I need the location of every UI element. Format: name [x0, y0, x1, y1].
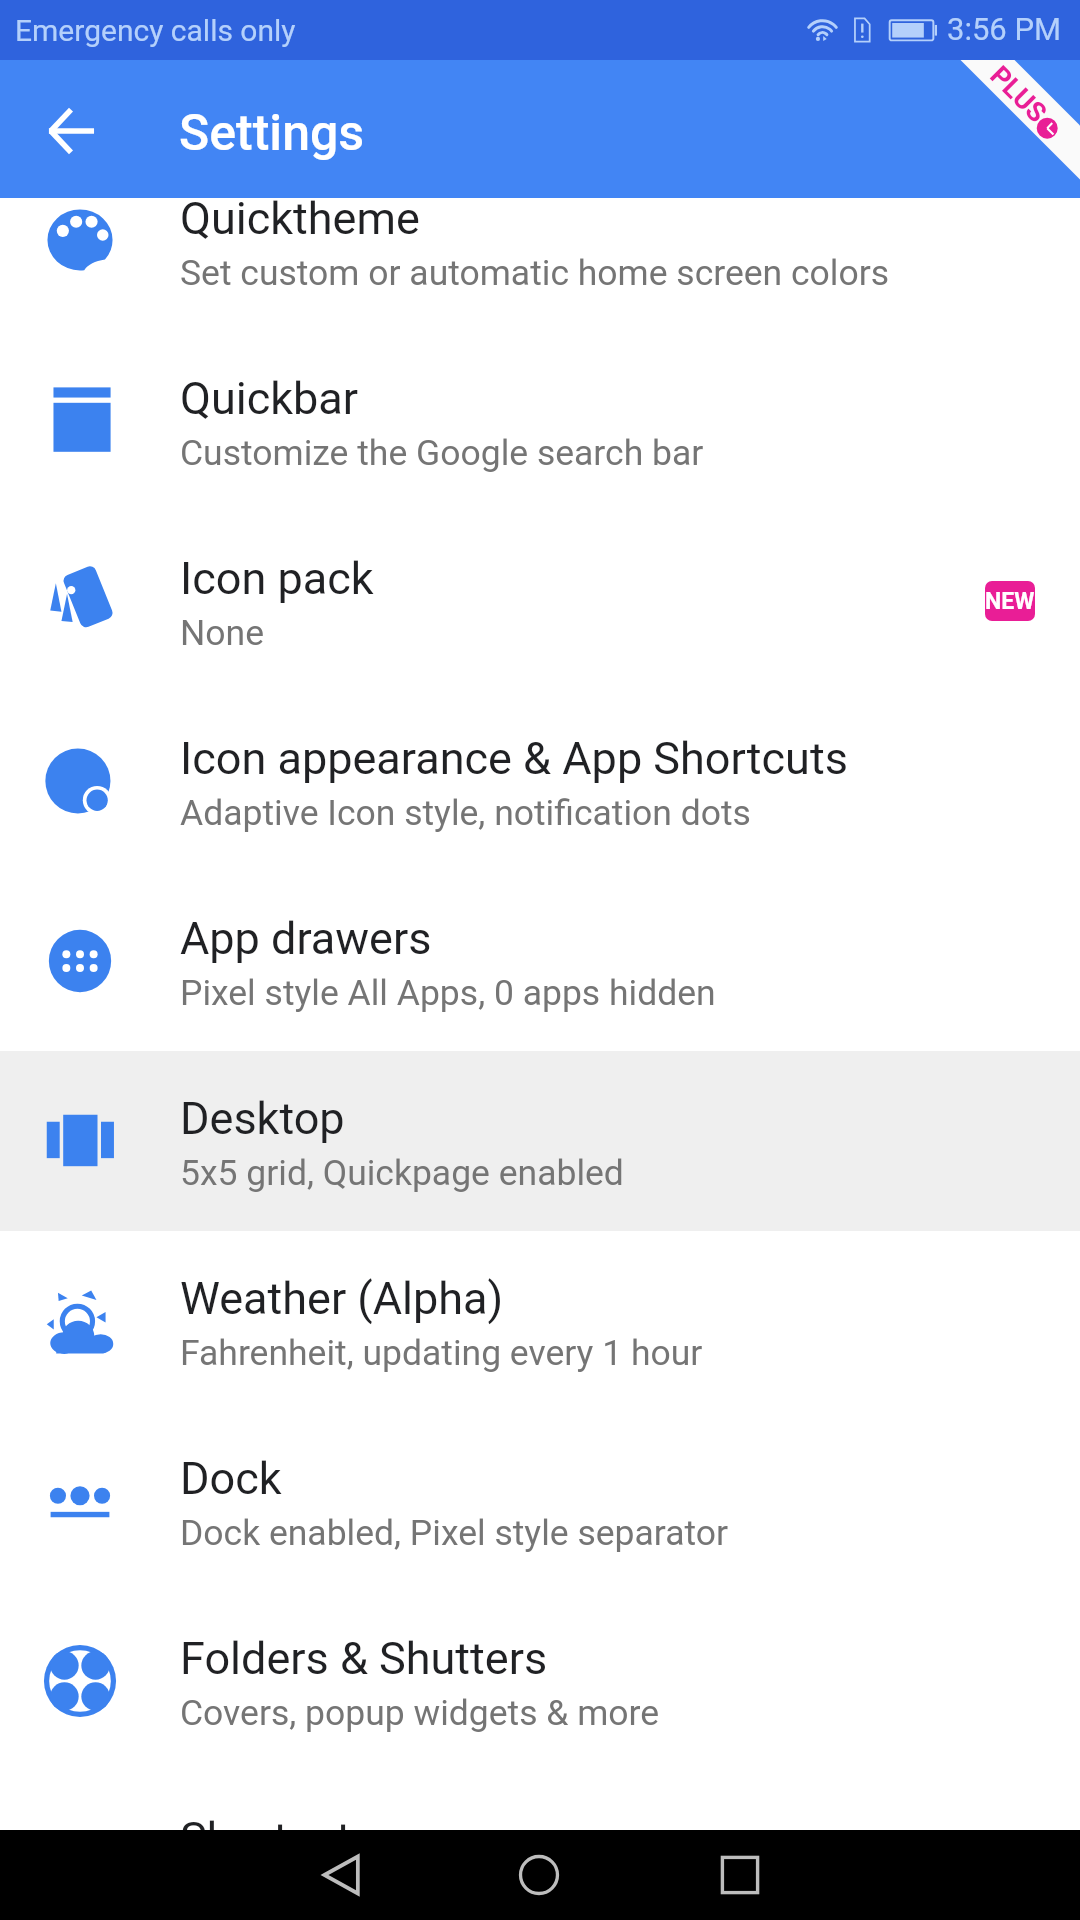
staticText: 3:56 PM: [947, 11, 1062, 47]
staticText: Icon appearance & App Shortcuts: [180, 732, 848, 785]
staticText: Folders & Shutters: [180, 1632, 548, 1685]
staticText: Dock enabled, Pixel style separator: [180, 1512, 728, 1554]
staticText: Dock: [180, 1452, 282, 1505]
staticText: Settings: [179, 104, 365, 163]
staticText: Icon pack: [180, 552, 374, 605]
button[interactable]: Quickbar: [0, 331, 1080, 511]
staticText: Set custom or automatic home screen colo…: [180, 252, 890, 294]
staticText: Desktop: [180, 1092, 345, 1145]
button[interactable]: Shortcuts: [0, 1771, 1080, 1920]
button[interactable]: Icon appearance & App Shortcuts: [0, 691, 1080, 871]
button[interactable]: Recents: [695, 1830, 785, 1920]
staticText: Pixel style All Apps, 0 apps hidden: [180, 972, 716, 1014]
staticText: Quicktheme: [180, 192, 420, 245]
staticText: Fahrenheit, updating every 1 hour: [180, 1332, 703, 1374]
staticText: NEW: [985, 588, 1035, 615]
button[interactable]: Plus upgrade: [920, 60, 1080, 198]
staticText: 5x5 grid, Quickpage enabled: [180, 1152, 624, 1194]
button[interactable]: Quicktheme: [0, 151, 1080, 331]
staticText: Weather (Alpha): [180, 1272, 504, 1325]
staticText: Shortcuts: [180, 1812, 375, 1865]
button[interactable]: Back: [22, 81, 118, 177]
button[interactable]: Dock: [0, 1411, 1080, 1591]
staticText: Quickbar: [180, 372, 359, 425]
staticText: Emergency calls only: [15, 13, 296, 48]
staticText: Covers, popup widgets & more: [180, 1692, 660, 1734]
staticText: Gestures, icon swipes & more: [180, 1872, 646, 1914]
button[interactable]: Desktop: [0, 1051, 1080, 1231]
staticText: None: [180, 612, 265, 654]
button[interactable]: App drawers: [0, 871, 1080, 1051]
staticText: Customize the Google search bar: [180, 432, 704, 474]
button[interactable]: Folders & Shutters: [0, 1591, 1080, 1771]
button[interactable]: Home: [494, 1830, 584, 1920]
button[interactable]: Back: [297, 1830, 387, 1920]
staticText: PLUS: [984, 60, 1054, 130]
button[interactable]: Icon pack: [0, 511, 1080, 691]
button[interactable]: Weather (Alpha): [0, 1231, 1080, 1411]
staticText: App drawers: [180, 912, 432, 965]
staticText: Adaptive Icon style, notification dots: [180, 792, 751, 834]
